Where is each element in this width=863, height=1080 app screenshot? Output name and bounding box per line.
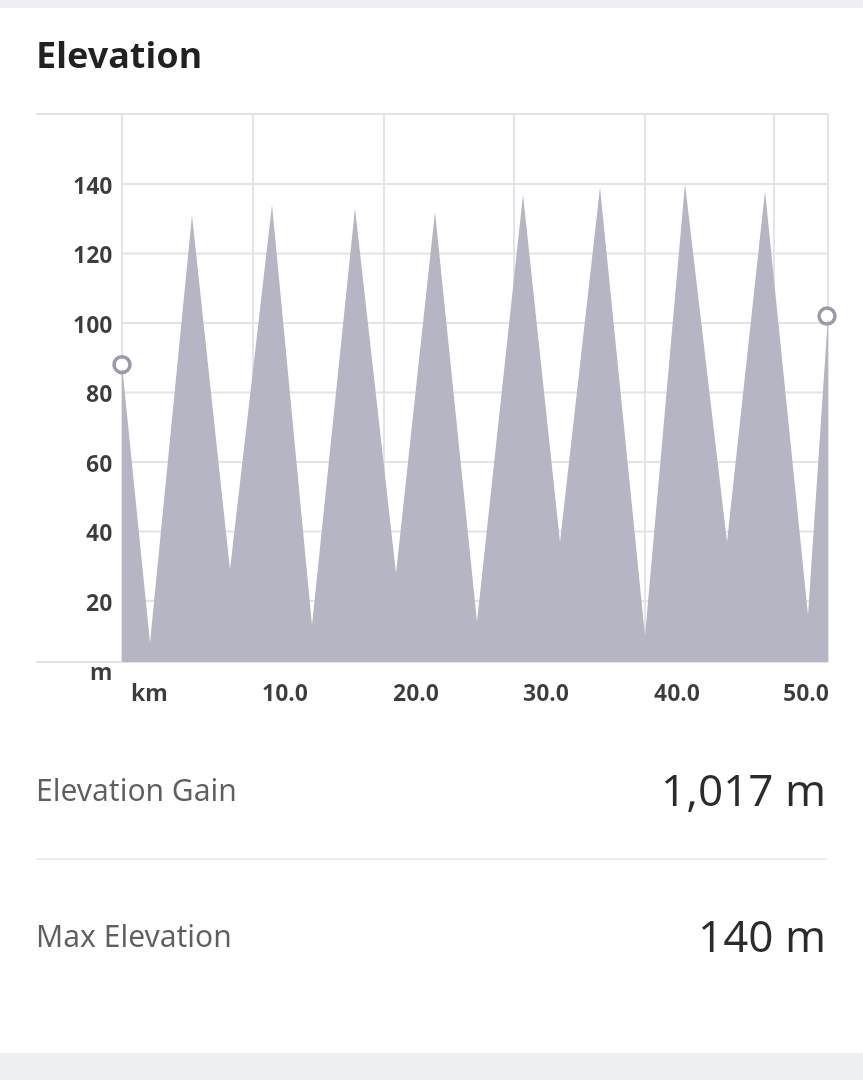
staticText: Max Elevation bbox=[36, 915, 232, 956]
staticText: Elevation Gain bbox=[36, 769, 237, 810]
button[interactable]: Elevation Gain bbox=[0, 720, 863, 858]
staticText: 1,017 m bbox=[661, 759, 827, 819]
button[interactable] bbox=[0, 100, 863, 720]
staticText: Elevation bbox=[36, 30, 203, 79]
button[interactable]: Max Elevation bbox=[0, 860, 863, 1010]
staticText: 140 m bbox=[698, 905, 827, 965]
